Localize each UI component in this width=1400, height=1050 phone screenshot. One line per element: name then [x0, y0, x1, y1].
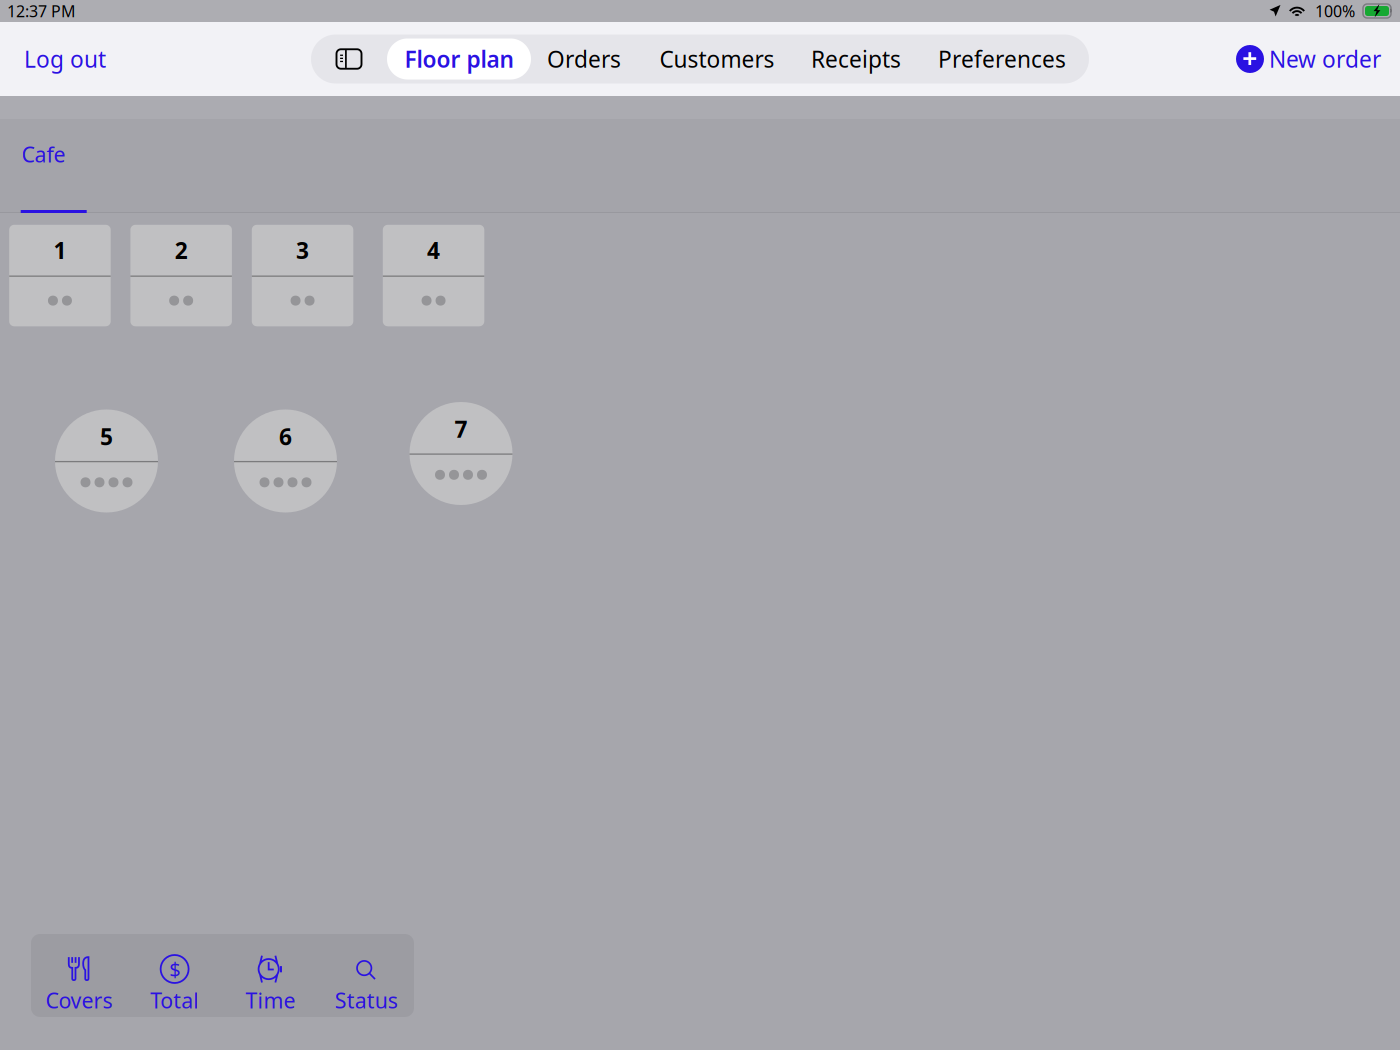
- button[interactable]: Toggle sidebar: [311, 34, 387, 83]
- button[interactable]: Receipts: [797, 34, 915, 83]
- staticText: 7: [454, 414, 467, 444]
- button[interactable]: Status: [318, 934, 414, 1017]
- staticText: 2: [175, 235, 188, 265]
- staticText: Customers: [659, 44, 774, 74]
- staticText: 5: [100, 421, 113, 451]
- staticText: New order: [1269, 44, 1381, 74]
- staticText: Receipts: [811, 44, 901, 74]
- button[interactable]: Table 4, 2 seats: [383, 225, 484, 326]
- button[interactable]: Table 2, 2 seats: [130, 225, 232, 326]
- button[interactable]: Covers: [31, 934, 127, 1017]
- button[interactable]: Log out: [0, 33, 130, 85]
- staticText: Log out: [24, 44, 106, 74]
- button[interactable]: Cafe: [21, 96, 87, 213]
- button[interactable]: New order: [1217, 33, 1400, 85]
- button[interactable]: Table 7, 4 seats: [409, 402, 512, 505]
- staticText: Covers: [45, 986, 112, 1014]
- staticText: Preferences: [938, 44, 1066, 74]
- button[interactable]: Table 3, 2 seats: [252, 225, 353, 326]
- staticText: Total: [150, 986, 199, 1014]
- staticText: 3: [296, 235, 309, 265]
- button[interactable]: Table 1, 2 seats: [9, 225, 111, 326]
- staticText: $: [169, 956, 180, 982]
- button[interactable]: Table 5, 4 seats: [55, 409, 158, 512]
- button[interactable]: Customers: [637, 34, 797, 83]
- staticText: 6: [279, 421, 292, 451]
- staticText: 100%: [1315, 0, 1355, 22]
- staticText: Floor plan: [404, 44, 513, 74]
- button[interactable]: Preferences: [915, 34, 1089, 83]
- button[interactable]: Floor plan: [387, 34, 531, 83]
- staticText: 4: [427, 235, 440, 265]
- staticText: Status: [335, 986, 398, 1014]
- staticText: Time: [245, 986, 295, 1014]
- staticText: 12:37 PM: [7, 0, 76, 22]
- button[interactable]: Time: [222, 934, 318, 1017]
- button[interactable]: $: [127, 934, 223, 1017]
- staticText: Orders: [547, 44, 621, 74]
- button[interactable]: Orders: [531, 34, 637, 83]
- staticText: 1: [53, 235, 66, 265]
- staticText: Cafe: [21, 140, 65, 168]
- button[interactable]: Table 6, 4 seats: [234, 409, 337, 512]
